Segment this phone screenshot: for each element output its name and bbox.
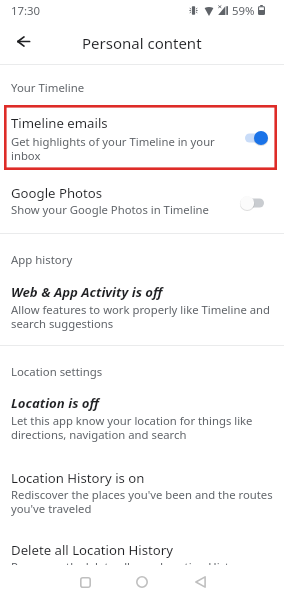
staticText: Permanently delete all your Location His… bbox=[11, 560, 247, 574]
staticText: Google Photos bbox=[11, 185, 103, 201]
staticText: 17:30 bbox=[11, 5, 41, 18]
staticText: Rediscover the places you've been and th… bbox=[11, 488, 274, 516]
button[interactable]: Timeline emails bbox=[0, 106, 284, 170]
staticText: Personal content bbox=[82, 35, 202, 53]
button[interactable]: Location History is on bbox=[0, 464, 284, 524]
button[interactable]: Web & App Activity is off bbox=[0, 277, 284, 339]
button[interactable]: Location is off bbox=[0, 389, 284, 451]
button[interactable]: Switch off bbox=[238, 189, 274, 217]
staticText: App history bbox=[11, 253, 73, 267]
button[interactable]: Back bbox=[11, 29, 36, 54]
staticText: Delete all Location History bbox=[11, 542, 173, 558]
staticText: 59% bbox=[232, 5, 255, 18]
staticText: Web & App Activity is off bbox=[11, 284, 163, 300]
staticText: Allow features to work properly like Tim… bbox=[11, 303, 274, 331]
staticText: Show your Google Photos in Timeline bbox=[11, 203, 209, 217]
staticText: Your Timeline bbox=[11, 81, 85, 95]
button[interactable]: Home bbox=[127, 568, 157, 596]
staticText: Get highlights of your Timeline in your … bbox=[11, 135, 223, 163]
button[interactable]: Back bbox=[185, 568, 215, 596]
staticText: Timeline emails bbox=[11, 115, 108, 131]
button[interactable]: Switch on bbox=[238, 124, 274, 152]
staticText: Location settings bbox=[11, 365, 103, 379]
staticText: Let this app know your location for thin… bbox=[11, 414, 274, 442]
staticText: Location History is on bbox=[11, 470, 145, 486]
button[interactable]: Google Photos bbox=[0, 178, 284, 228]
button[interactable]: Recent apps bbox=[70, 568, 100, 596]
staticText: Location is off bbox=[11, 395, 99, 411]
button[interactable]: Delete all Location History bbox=[0, 536, 284, 586]
